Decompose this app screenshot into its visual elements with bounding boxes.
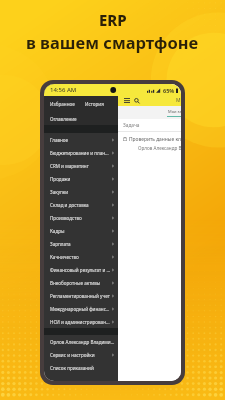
button[interactable]: Кадры xyxy=(44,224,118,237)
staticText: Внеоборотные активы xyxy=(50,280,111,286)
button[interactable]: Склад и доставка xyxy=(44,198,118,211)
staticText: Регламентированный учет xyxy=(50,293,111,299)
button[interactable]: Мои зад xyxy=(167,109,181,117)
staticText: Производство xyxy=(50,215,111,221)
button[interactable]: CRM и маркетинг xyxy=(44,159,118,172)
staticText: Избранное xyxy=(50,101,75,107)
staticText: 14:56 AM xyxy=(50,86,77,94)
staticText: Главное xyxy=(50,137,111,143)
staticText: CRM и маркетинг xyxy=(50,163,111,169)
staticText: ERP xyxy=(99,10,127,30)
staticText: Международный финансовый ... xyxy=(50,306,111,312)
button[interactable]: Производство xyxy=(44,211,118,224)
staticText: Финансовый результат и контр... xyxy=(50,267,111,273)
button[interactable]: Регламентированный учет xyxy=(44,289,118,302)
staticText: Орлов Александр Влади xyxy=(138,145,181,151)
staticText: Зарплата xyxy=(50,241,111,247)
staticText: НСИ и администрирование xyxy=(50,319,111,325)
staticText: 65% xyxy=(163,87,175,94)
button[interactable]: Проверить данные клиен xyxy=(118,132,181,151)
button[interactable]: Закупки xyxy=(44,185,118,198)
staticText: М xyxy=(176,97,181,104)
staticText: Бюджетирование и планирова... xyxy=(50,150,111,156)
button[interactable]: Сервис и настройки xyxy=(44,348,118,361)
button[interactable]: Международный финансовый ... xyxy=(44,302,118,315)
button[interactable]: Search xyxy=(133,97,140,104)
button[interactable]: Качничество xyxy=(44,250,118,263)
staticText: История xyxy=(85,101,104,107)
button[interactable]: Список приказаний xyxy=(44,361,118,374)
button[interactable]: Финансовый результат и контр... xyxy=(44,263,118,276)
staticText: Закупки xyxy=(50,189,111,195)
staticText: Мои зад xyxy=(168,109,181,114)
staticText: Задача xyxy=(123,122,140,129)
staticText: Проверить данные клиен xyxy=(129,136,181,143)
staticText: Сервис и настройки xyxy=(50,352,111,358)
staticText: Склад и доставка xyxy=(50,202,111,208)
button[interactable]: Зарплата xyxy=(44,237,118,250)
button[interactable]: Главное xyxy=(44,133,118,146)
staticText: Список приказаний xyxy=(50,365,115,371)
staticText: Оглавление xyxy=(50,116,77,122)
button[interactable]: Бюджетирование и планирова... xyxy=(44,146,118,159)
staticText: в вашем смартфоне xyxy=(26,31,199,53)
button[interactable]: Внеоборотные активы xyxy=(44,276,118,289)
staticText: Орлов Александр Владимирович xyxy=(50,339,115,345)
button[interactable]: Орлов Александр Владимирович xyxy=(44,335,118,348)
button[interactable]: Продажи xyxy=(44,172,118,185)
staticText: Кадры xyxy=(50,228,111,234)
staticText: Качничество xyxy=(50,254,111,260)
button[interactable]: Open navigation menu xyxy=(123,97,130,104)
button[interactable]: НСИ и администрирование xyxy=(44,315,118,328)
staticText: Продажи xyxy=(50,176,111,182)
